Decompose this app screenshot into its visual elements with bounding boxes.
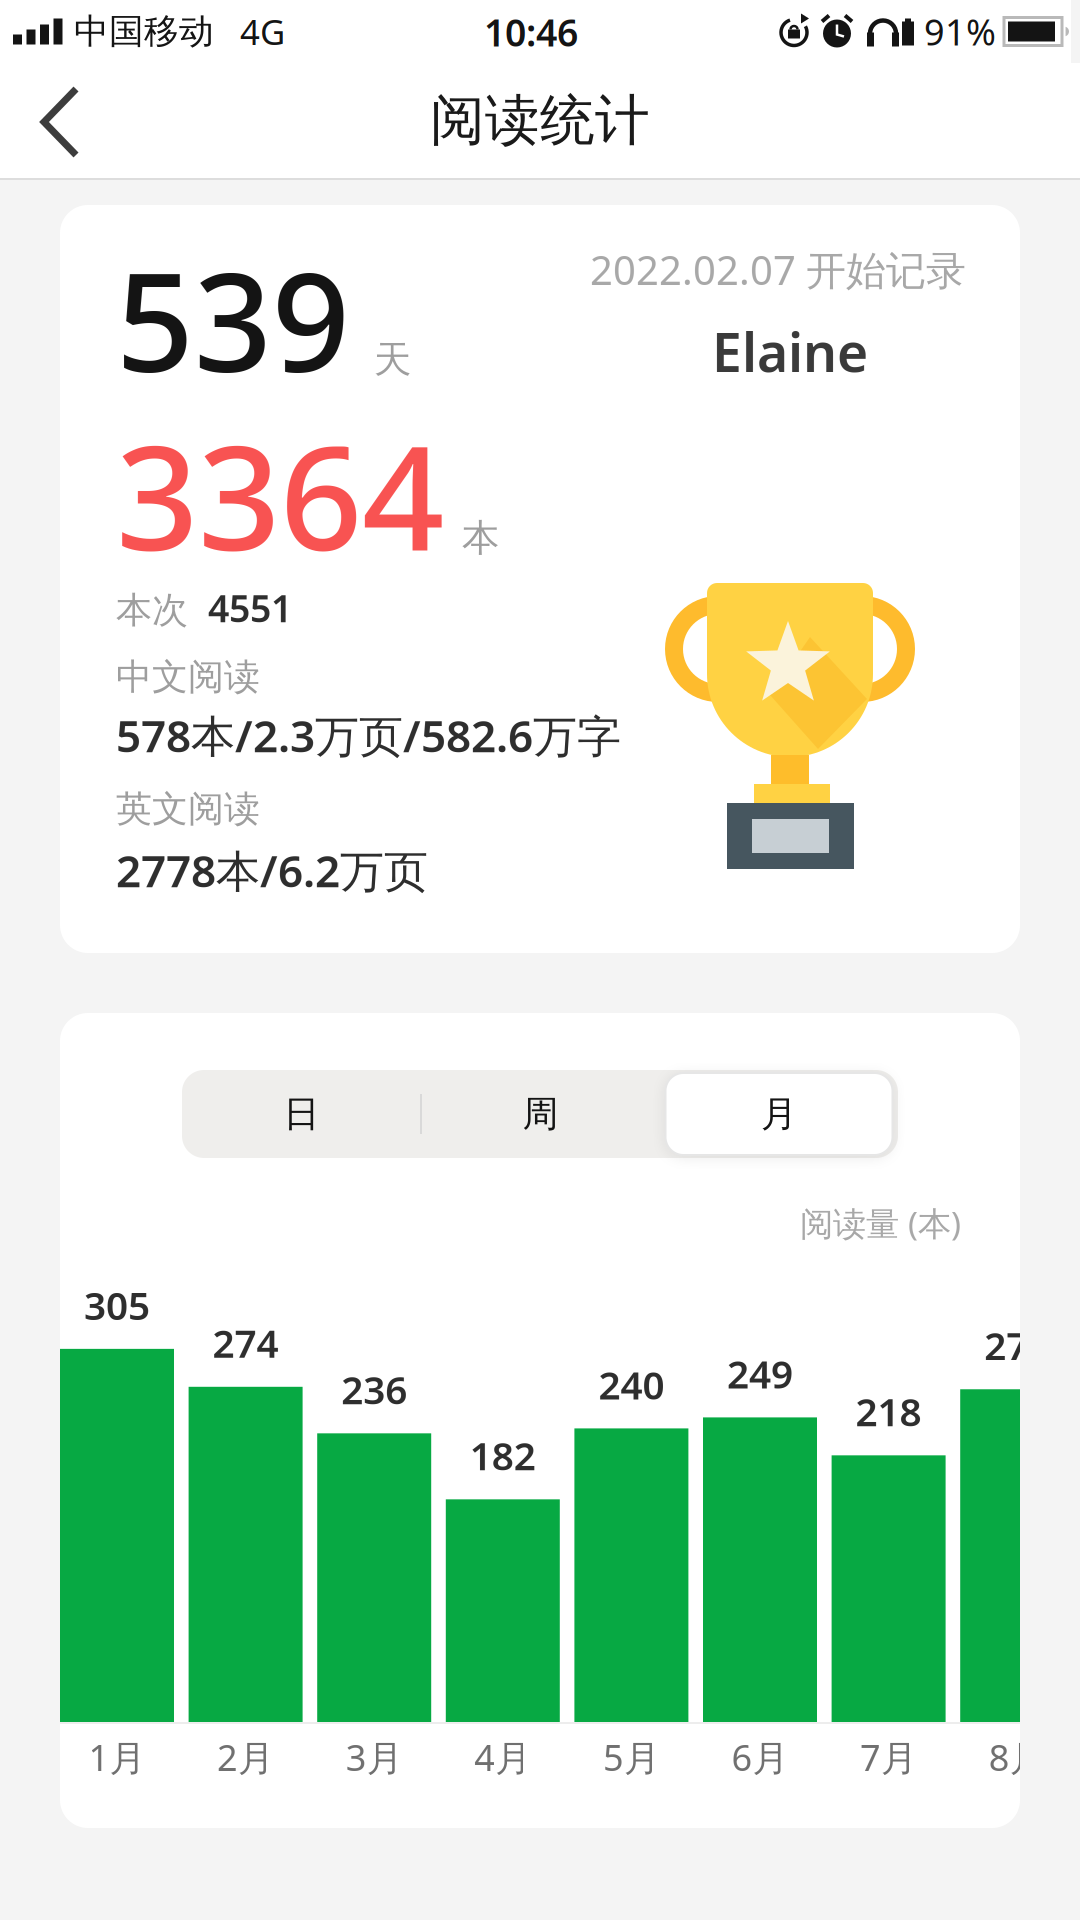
staticText: 月 xyxy=(761,1092,797,1136)
staticText: 182 xyxy=(470,1430,536,1481)
staticText: 4G xyxy=(240,8,285,54)
staticText: 274 xyxy=(213,1317,279,1368)
staticText: 中文阅读 xyxy=(116,655,260,699)
staticText: 本次 xyxy=(116,588,188,632)
staticText: 3月 xyxy=(346,1733,403,1781)
staticText: 218 xyxy=(856,1386,922,1437)
staticText: 6月 xyxy=(731,1733,788,1781)
staticText: 2022.02.07 开始记录 xyxy=(590,243,966,296)
staticText: 10:46 xyxy=(484,7,578,57)
staticText: 天 xyxy=(374,337,411,383)
staticText: 英文阅读 xyxy=(116,787,260,831)
staticText: 本 xyxy=(462,515,499,561)
staticText: 578本/2.3万页/582.6万字 xyxy=(116,706,621,764)
staticText: 8月 xyxy=(989,1733,1046,1781)
staticText: 240 xyxy=(598,1359,664,1410)
staticText: 阅读统计 xyxy=(430,87,650,154)
staticText: 539 xyxy=(116,229,350,410)
button[interactable]: 周 xyxy=(421,1070,660,1158)
staticText: 236 xyxy=(341,1364,407,1415)
staticText: 日 xyxy=(283,1092,319,1136)
staticText: 1月 xyxy=(88,1733,145,1781)
staticText: 4551 xyxy=(208,583,292,633)
staticText: 2778本/6.2万页 xyxy=(116,841,428,899)
staticText: 249 xyxy=(727,1348,793,1399)
staticText: 2月 xyxy=(217,1733,274,1781)
button[interactable]: 月 xyxy=(665,1073,892,1155)
staticText: 305 xyxy=(84,1279,150,1330)
staticText: 91% xyxy=(924,8,996,55)
staticText: 阅读量 (本) xyxy=(800,1201,961,1245)
staticText: 5月 xyxy=(603,1733,660,1781)
staticText: 周 xyxy=(522,1092,558,1136)
staticText: 272 xyxy=(984,1320,1050,1371)
button[interactable]: 日 xyxy=(182,1070,421,1158)
staticText: 中国移动 xyxy=(74,10,214,53)
staticText: 3364 xyxy=(116,399,444,590)
staticText: 7月 xyxy=(860,1733,917,1781)
staticText: 4月 xyxy=(474,1733,531,1781)
staticText: Elaine xyxy=(712,316,868,387)
button[interactable]: Back xyxy=(0,63,90,167)
